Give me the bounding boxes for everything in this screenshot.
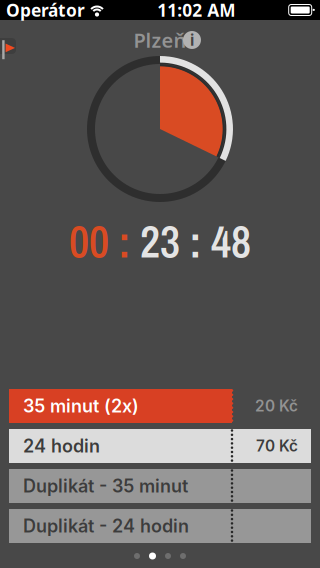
staticText: Duplikát - 24 hodin — [23, 515, 189, 537]
staticText: 24 hodin — [23, 435, 100, 457]
staticText: 35 minut (2x) — [23, 395, 139, 417]
staticText: 70 Kč — [256, 437, 298, 455]
staticText: 00 — [69, 212, 109, 271]
staticText: Plzeň — [133, 27, 186, 53]
staticText: 23 : 48 — [140, 212, 251, 271]
button[interactable]: 35 minut (2x) — [9, 389, 311, 423]
staticText: 11:02 AM — [157, 0, 235, 21]
staticText: : — [109, 212, 140, 271]
button[interactable]: 24 hodin — [9, 429, 311, 463]
staticText: 20 Kč — [255, 397, 298, 415]
button[interactable]: Information — [183, 31, 201, 49]
button[interactable]: Duplikát - 24 hodin — [9, 509, 311, 543]
staticText: Operátor — [6, 0, 85, 21]
staticText: Duplikát - 35 minut — [23, 475, 188, 497]
staticText: i — [190, 30, 194, 50]
button[interactable]: Open menu — [0, 38, 17, 62]
button[interactable]: Duplikát - 35 minut — [9, 469, 311, 503]
